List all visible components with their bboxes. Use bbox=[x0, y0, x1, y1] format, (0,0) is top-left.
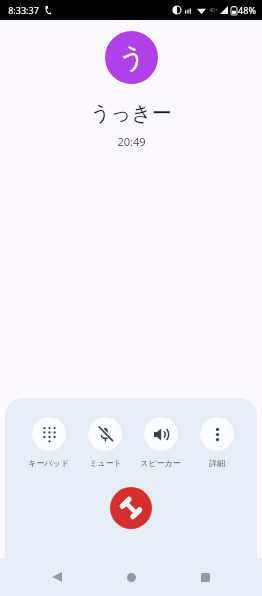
staticText: 8:33:37 bbox=[8, 4, 39, 16]
button[interactable]: Home bbox=[114, 560, 148, 594]
other: More options bbox=[200, 417, 234, 451]
staticText: キーパッド bbox=[28, 458, 69, 468]
button[interactable]: More options bbox=[198, 416, 236, 469]
staticText: 詳細 bbox=[209, 458, 225, 468]
staticText: ミュート bbox=[89, 458, 122, 468]
button[interactable]: End call bbox=[110, 487, 152, 529]
staticText: 48% bbox=[238, 4, 256, 16]
staticText: 40+ bbox=[209, 7, 218, 14]
staticText: スピーカー bbox=[140, 458, 181, 468]
button[interactable]: Recent apps bbox=[188, 560, 222, 594]
other: Speaker bbox=[144, 417, 178, 451]
staticText: う bbox=[118, 41, 146, 75]
other: Keypad bbox=[32, 417, 66, 451]
button[interactable]: Keypad bbox=[26, 416, 71, 469]
button[interactable]: Speaker bbox=[138, 416, 183, 469]
staticText: 20:49 bbox=[117, 134, 146, 149]
staticText: うっきー bbox=[90, 101, 172, 126]
button[interactable]: Mute bbox=[86, 416, 124, 469]
other: Mute bbox=[88, 417, 122, 451]
button[interactable]: Back bbox=[40, 560, 74, 594]
